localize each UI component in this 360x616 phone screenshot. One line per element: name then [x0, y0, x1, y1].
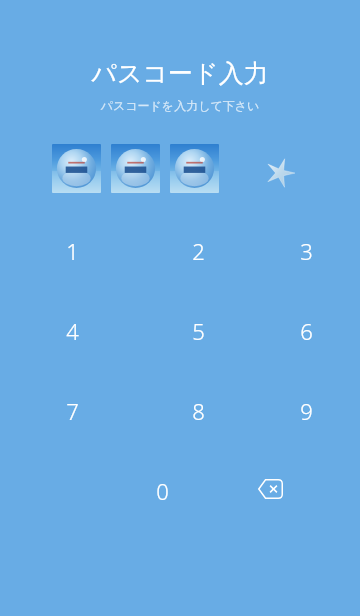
button[interactable]: Passcode digit entered: [111, 144, 160, 193]
button[interactable]: Delete: [216, 476, 324, 502]
button[interactable]: 9: [252, 396, 360, 422]
staticText: 5: [192, 316, 205, 342]
button[interactable]: 1: [0, 236, 144, 262]
staticText: 0: [156, 476, 169, 502]
button[interactable]: 8: [144, 396, 252, 422]
staticText: 3: [300, 236, 313, 262]
staticText: 9: [300, 396, 313, 422]
button[interactable]: 7: [0, 396, 144, 422]
staticText: 4: [66, 316, 79, 342]
staticText: パスコード入力: [0, 58, 360, 89]
staticText: 2: [192, 236, 205, 262]
button[interactable]: 5: [144, 316, 252, 342]
staticText: 7: [66, 396, 79, 422]
button[interactable]: 3: [252, 236, 360, 262]
button[interactable]: 6: [252, 316, 360, 342]
button[interactable]: Passcode digit entered: [170, 144, 219, 193]
button[interactable]: Passcode digit entered: [52, 144, 101, 193]
button[interactable]: 2: [144, 236, 252, 262]
staticText: 1: [66, 236, 79, 262]
button[interactable]: 4: [0, 316, 144, 342]
button[interactable]: 0: [108, 476, 216, 502]
staticText: パスコードを入力して下さい: [0, 98, 360, 113]
staticText: 8: [192, 396, 205, 422]
staticText: 6: [300, 316, 313, 342]
